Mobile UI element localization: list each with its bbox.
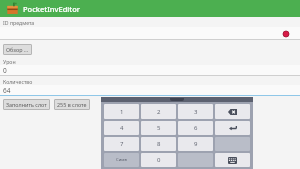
staticText: Симв: [116, 157, 127, 163]
button[interactable]: Backspace: [215, 104, 250, 119]
staticText: 8: [157, 140, 161, 148]
button[interactable]: Симв: [104, 153, 139, 167]
staticText: PocketInvEditor: [23, 4, 80, 14]
button[interactable]: 3: [178, 104, 213, 119]
button[interactable]: 7: [104, 137, 139, 151]
staticText: 9: [194, 140, 198, 148]
button[interactable]: 255 в слоте: [54, 99, 90, 110]
button[interactable]: 64: [0, 85, 300, 96]
button[interactable]: App icon: [0, 0, 300, 17]
staticText: 7: [120, 140, 124, 148]
staticText: ID предмета: [3, 19, 35, 26]
button[interactable]: 5: [141, 121, 176, 135]
button[interactable]: 1: [104, 104, 139, 119]
button[interactable]: Switch keyboard: [215, 153, 250, 167]
staticText: 0: [157, 156, 161, 164]
staticText: Заполнить слот: [6, 101, 47, 108]
staticText: Обзор ...: [6, 46, 29, 53]
other: App icon: [6, 2, 19, 15]
staticText: Урон: [3, 58, 16, 65]
button[interactable]: 0: [141, 153, 176, 167]
staticText: Количество: [3, 78, 33, 85]
button[interactable]: 8: [141, 137, 176, 151]
staticText: 1: [120, 108, 124, 116]
staticText: 3: [194, 108, 198, 116]
button[interactable]: 9: [178, 137, 213, 151]
staticText: 6: [194, 124, 198, 132]
button[interactable]: Заполнить слот: [3, 99, 50, 110]
button[interactable]: 6: [178, 121, 213, 135]
staticText: 64: [3, 86, 11, 95]
button[interactable]: 4: [104, 121, 139, 135]
button[interactable]: Обзор ...: [3, 44, 32, 55]
staticText: 0: [3, 66, 7, 75]
button[interactable]: Enter: [215, 121, 250, 135]
button[interactable]: [0, 27, 300, 40]
staticText: 255 в слоте: [57, 101, 87, 108]
button[interactable]: 2: [141, 104, 176, 119]
staticText: 4: [120, 124, 124, 132]
button[interactable]: 0: [0, 65, 300, 76]
staticText: 2: [157, 108, 161, 116]
staticText: 5: [157, 124, 161, 132]
